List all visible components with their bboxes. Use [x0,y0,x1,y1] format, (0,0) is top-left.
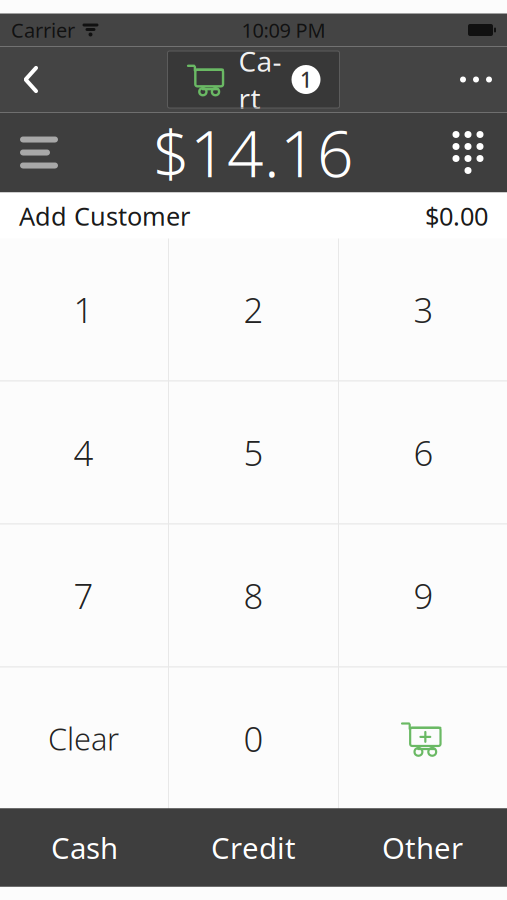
button[interactable]: Credit [169,808,338,886]
staticText: 9 [413,572,433,618]
button[interactable]: 1 [0,238,168,380]
button[interactable]: 3 [339,238,507,380]
button[interactable]: 9 [339,524,507,666]
button[interactable]: Other [338,808,507,886]
button[interactable]: 6 [339,381,507,523]
staticText: 10:09 PM [241,17,325,43]
staticText: 3 [413,286,433,332]
staticText: 4 [73,429,93,475]
staticText: Clear [48,718,119,759]
button[interactable]: 4 [0,381,168,523]
button[interactable]: 7 [0,524,168,666]
staticText: Cart [238,42,281,117]
staticText: 6 [413,429,433,475]
staticText: Carrier [11,17,75,43]
button[interactable]: 0 [169,667,338,809]
staticText: $0.00 [425,199,488,233]
staticText: $14.16 [153,110,354,195]
staticText: 8 [243,572,263,618]
button[interactable]: 2 [169,238,338,380]
button[interactable]: Add Customer [0,192,507,239]
button[interactable]: Cash [0,808,169,886]
staticText: 7 [73,572,93,618]
staticText: 1 [73,286,93,332]
button[interactable]: 8 [169,524,338,666]
button[interactable]: Cart [167,51,339,108]
button[interactable]: More options [445,46,507,112]
staticText: Cash [51,828,118,867]
button[interactable]: Clear [0,667,168,809]
staticText: Other [382,828,463,867]
staticText: 1 [300,65,312,94]
staticText: 5 [243,429,263,475]
button[interactable]: Menu [0,113,78,191]
button[interactable]: Back [0,46,62,112]
button[interactable]: Keypad [429,113,507,191]
button[interactable]: Add to cart [339,667,507,809]
staticText: 0 [243,715,263,761]
staticText: Add Customer [19,199,190,233]
staticText: 2 [243,286,263,332]
button[interactable]: 5 [169,381,338,523]
staticText: Credit [211,828,296,867]
